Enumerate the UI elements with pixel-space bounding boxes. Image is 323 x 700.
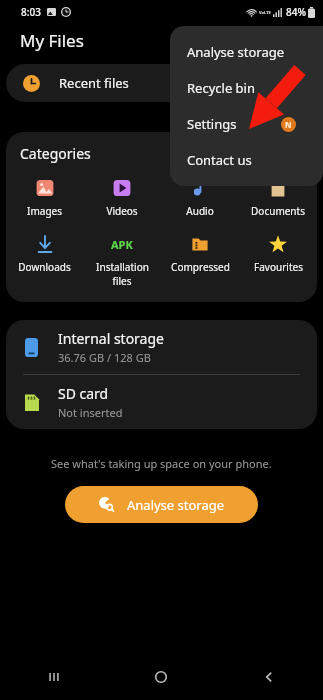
- button[interactable]: Recycle bin: [170, 70, 323, 106]
- button[interactable]: Favourites: [239, 232, 317, 275]
- staticText: Not inserted: [58, 405, 123, 420]
- staticText: APK: [111, 237, 133, 252]
- button[interactable]: Recent apps: [0, 654, 107, 700]
- staticText: 8:03: [21, 5, 41, 19]
- button[interactable]: Home: [107, 654, 215, 700]
- button[interactable]: SD card: [6, 375, 317, 429]
- staticText: 84%: [286, 5, 306, 19]
- button[interactable]: Recent files: [6, 64, 317, 102]
- staticText: VoLTE: [259, 10, 271, 15]
- button[interactable]: Contact us: [170, 142, 323, 178]
- staticText: Documents: [251, 204, 305, 218]
- staticText: My Files: [20, 29, 84, 52]
- button[interactable]: Back: [215, 654, 323, 700]
- button[interactable]: Downloads: [6, 232, 83, 275]
- button[interactable]: Compressed: [161, 232, 239, 275]
- staticText: Videos: [106, 204, 138, 218]
- staticText: Installation: [96, 260, 149, 274]
- staticText: Compressed: [171, 260, 230, 274]
- staticText: Internal storage: [58, 329, 164, 348]
- button[interactable]: APK: [83, 232, 161, 289]
- staticText: N: [285, 119, 292, 130]
- button[interactable]: Videos: [83, 176, 161, 219]
- button[interactable]: Analyse storage: [170, 34, 323, 70]
- staticText: Downloads: [18, 260, 71, 274]
- staticText: Images: [27, 204, 62, 218]
- staticText: Categories: [20, 144, 91, 163]
- staticText: See what's taking up space on your phone…: [51, 456, 272, 471]
- button[interactable]: Analyse storage: [65, 486, 258, 523]
- button[interactable]: Internal storage: [6, 320, 317, 374]
- staticText: Recent files: [59, 74, 129, 92]
- staticText: Favourites: [254, 260, 303, 274]
- staticText: Analyse storage: [187, 43, 285, 61]
- staticText: Settings: [187, 115, 237, 133]
- staticText: Recycle bin: [187, 79, 255, 97]
- staticText: Contact us: [187, 151, 252, 169]
- staticText: Analyse storage: [127, 496, 225, 514]
- button[interactable]: Images: [6, 176, 83, 219]
- button[interactable]: Audio: [161, 176, 239, 219]
- staticText: Audio: [186, 204, 214, 218]
- button[interactable]: Documents: [239, 176, 317, 219]
- staticText: 36.76 GB / 128 GB: [58, 350, 151, 365]
- button[interactable]: Settings: [170, 106, 323, 142]
- staticText: files: [112, 274, 132, 288]
- staticText: SD card: [58, 384, 109, 403]
